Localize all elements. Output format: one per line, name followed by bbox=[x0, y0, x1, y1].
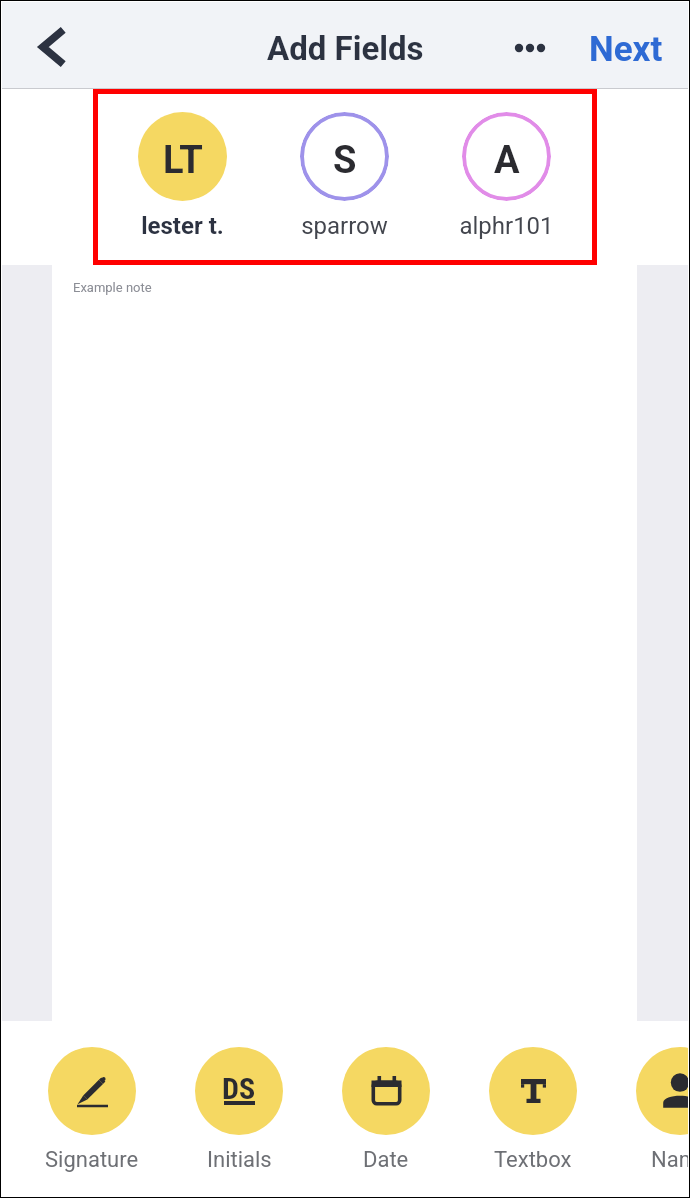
staticText: sparrow bbox=[301, 212, 388, 240]
staticText: Add Fields bbox=[267, 29, 424, 68]
staticText: S bbox=[333, 138, 357, 183]
button[interactable]: Textbox bbox=[463, 1047, 603, 1173]
button[interactable]: LT bbox=[112, 112, 252, 240]
button[interactable]: Next bbox=[579, 19, 673, 80]
staticText: A bbox=[494, 138, 520, 183]
staticText: Example note bbox=[73, 280, 152, 295]
button[interactable]: More options bbox=[504, 19, 556, 71]
button[interactable]: A bbox=[436, 112, 576, 240]
button[interactable]: Signature bbox=[22, 1047, 162, 1173]
staticText: Date bbox=[363, 1147, 409, 1173]
button[interactable]: S bbox=[274, 112, 414, 240]
staticText: Name bbox=[651, 1147, 690, 1173]
staticText: alphr101 bbox=[459, 212, 554, 240]
staticText: Next bbox=[589, 29, 663, 70]
button[interactable]: Date bbox=[316, 1047, 456, 1173]
button[interactable]: Back bbox=[25, 19, 81, 75]
staticText: Textbox bbox=[494, 1147, 572, 1173]
staticText: lester t. bbox=[141, 212, 224, 240]
button[interactable]: Name bbox=[610, 1047, 690, 1173]
button[interactable]: DS bbox=[169, 1047, 309, 1173]
staticText: Initials bbox=[207, 1147, 272, 1173]
staticText: Signature bbox=[45, 1147, 139, 1173]
staticText: DS bbox=[222, 1071, 256, 1106]
staticText: LT bbox=[163, 138, 203, 183]
